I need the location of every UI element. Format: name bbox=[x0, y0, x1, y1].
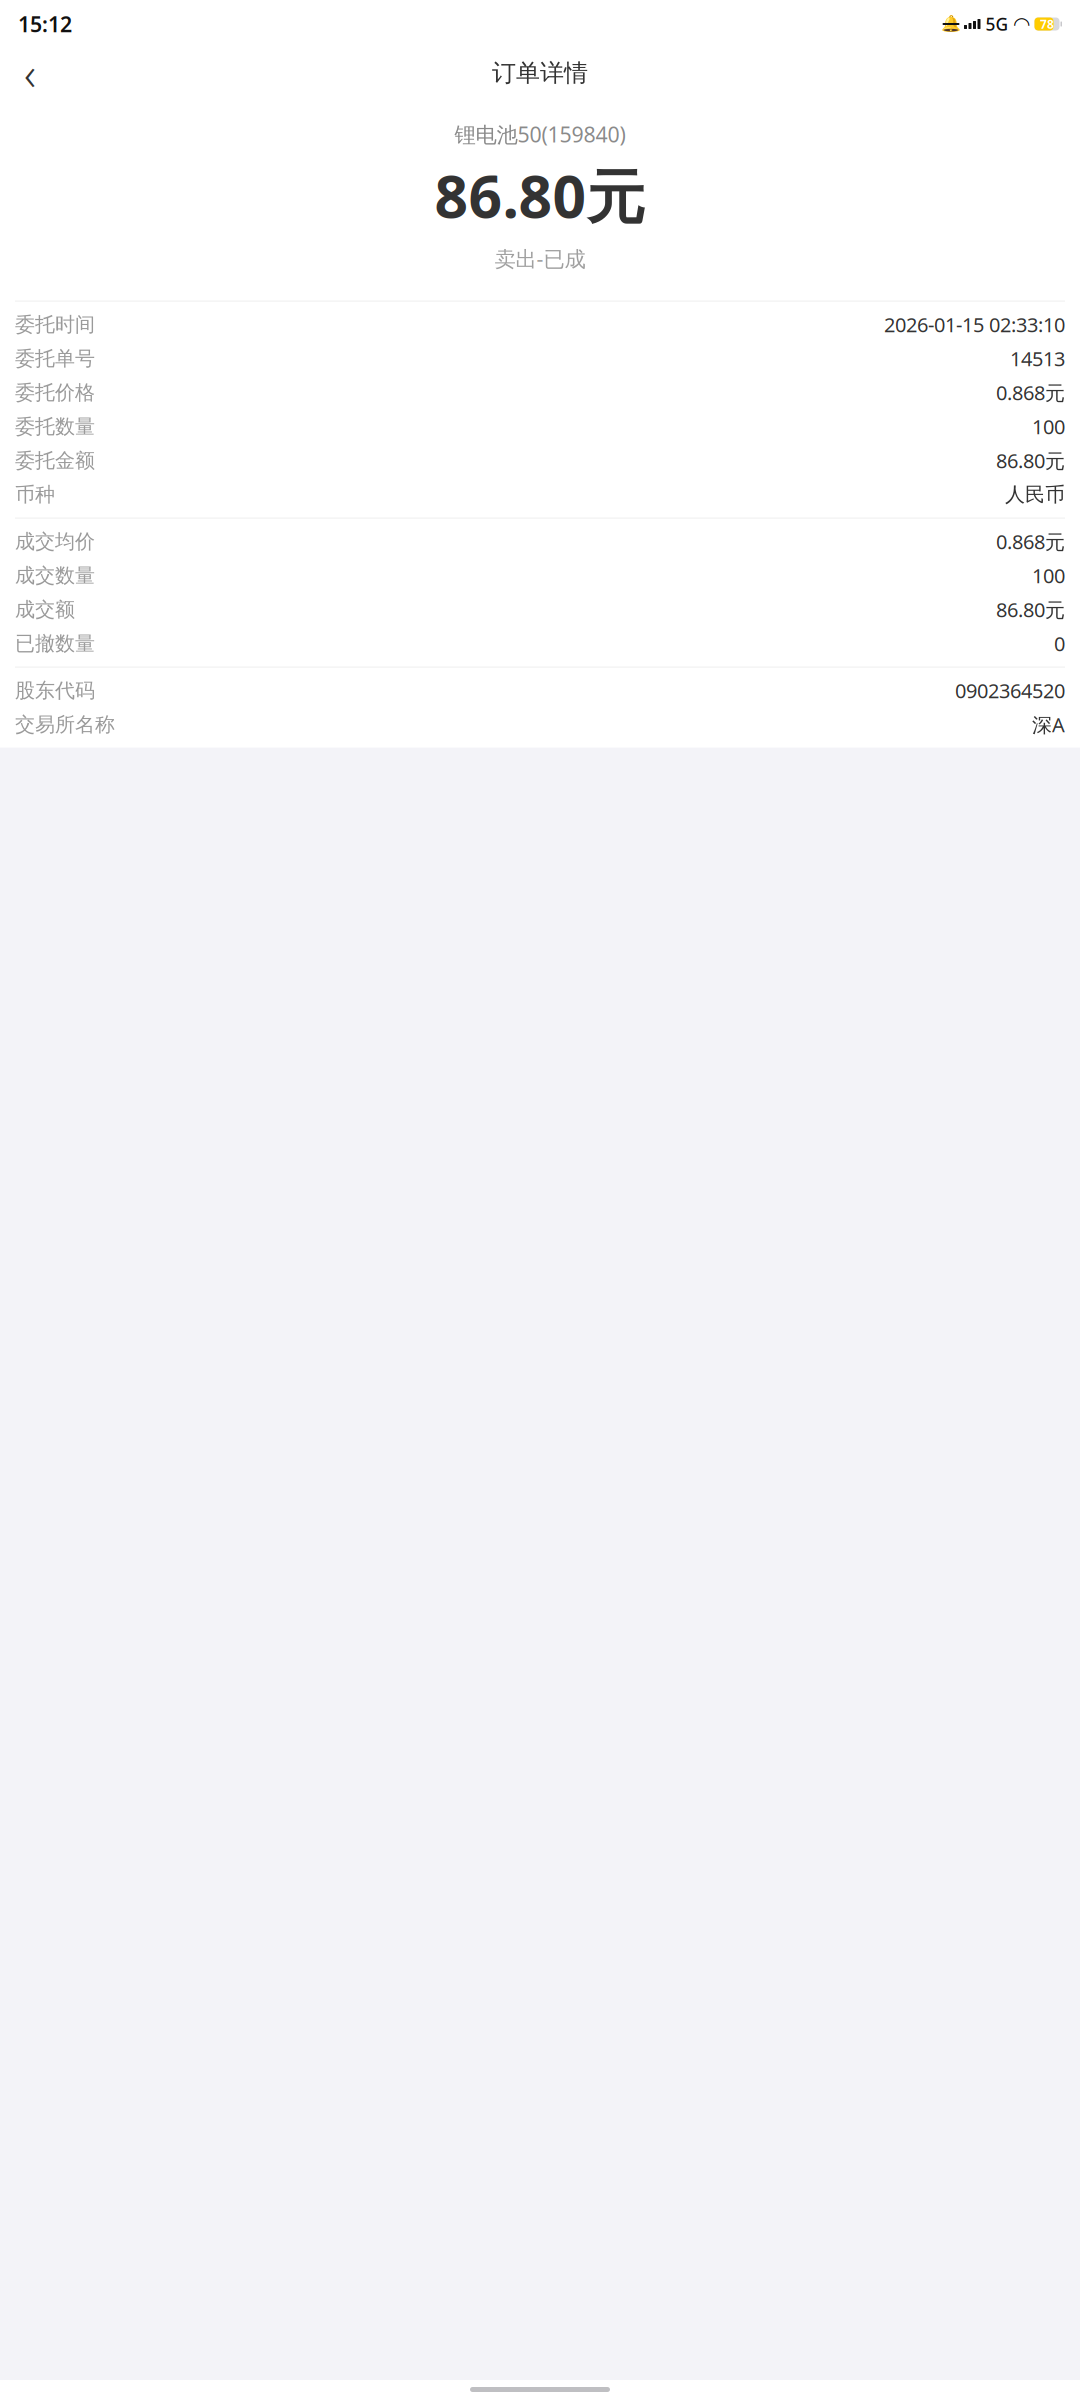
staticText: 成交数量 bbox=[15, 563, 95, 588]
staticText: 78 bbox=[1040, 16, 1054, 32]
staticText: ‹ bbox=[24, 43, 36, 103]
staticText: 100 bbox=[1032, 413, 1065, 440]
staticText: 5G bbox=[985, 12, 1008, 35]
staticText: 股东代码 bbox=[15, 678, 95, 703]
staticText: 🔔 bbox=[941, 15, 961, 33]
staticText: 100 bbox=[1032, 562, 1065, 589]
staticText: 已撤数量 bbox=[15, 631, 95, 656]
staticText: 86.80元 bbox=[996, 596, 1065, 623]
staticText: 2026-01-15 02:33:10 bbox=[884, 311, 1065, 338]
staticText: 订单详情 bbox=[492, 58, 588, 88]
staticText: 86.80元 bbox=[996, 447, 1065, 474]
staticText: 委托价格 bbox=[15, 380, 95, 405]
staticText: 委托时间 bbox=[15, 312, 95, 337]
staticText: 成交额 bbox=[15, 597, 75, 622]
button[interactable]: Back bbox=[8, 51, 52, 95]
staticText: 委托数量 bbox=[15, 414, 95, 439]
staticText: 委托单号 bbox=[15, 346, 95, 371]
staticText: 交易所名称 bbox=[15, 712, 115, 737]
staticText: 委托金额 bbox=[15, 448, 95, 473]
staticText: 0 bbox=[1054, 630, 1065, 657]
staticText: 卖出-已成 bbox=[494, 244, 585, 272]
staticText: ◠ bbox=[1013, 13, 1030, 35]
staticText: 0.868元 bbox=[996, 528, 1065, 555]
staticText: 成交均价 bbox=[15, 529, 95, 554]
staticText: 人民币 bbox=[1005, 482, 1065, 507]
staticText: 0.868元 bbox=[996, 379, 1065, 406]
staticText: 15:12 bbox=[18, 10, 72, 38]
staticText: 86.80元 bbox=[434, 156, 645, 234]
staticText: 币种 bbox=[15, 482, 55, 507]
staticText: 0902364520 bbox=[955, 677, 1065, 704]
staticText: 深A bbox=[1032, 711, 1065, 738]
staticText: 14513 bbox=[1010, 345, 1065, 372]
staticText: 锂电池50(159840) bbox=[454, 120, 625, 148]
